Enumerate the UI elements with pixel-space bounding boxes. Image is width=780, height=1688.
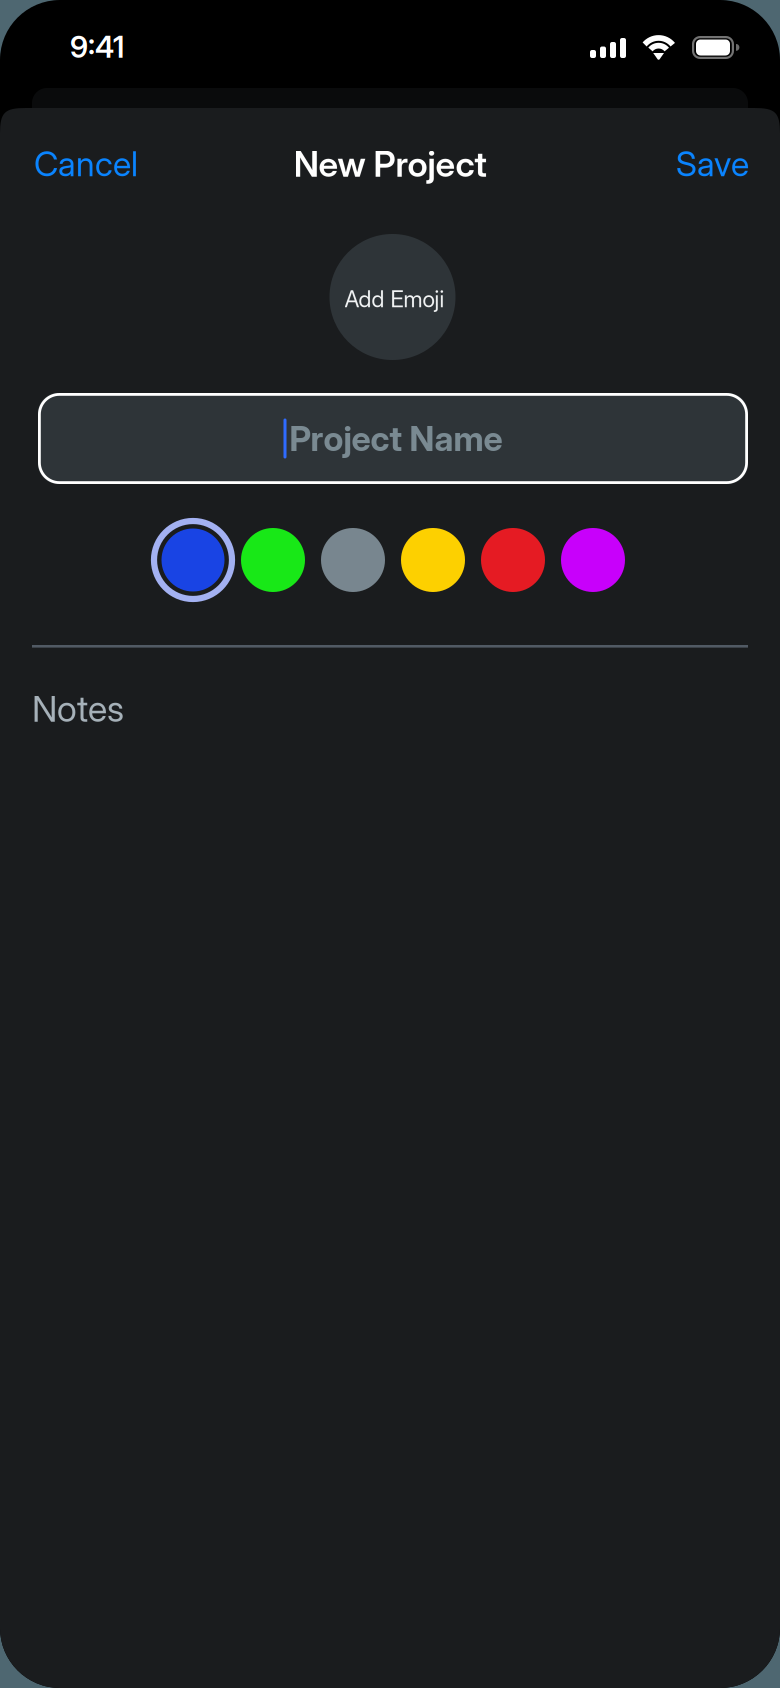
staticText: Cancel	[34, 143, 138, 184]
button[interactable]: Add Emoji	[329, 234, 455, 360]
staticText: 9:41	[70, 29, 124, 65]
button[interactable]: Green	[233, 516, 313, 604]
button[interactable]: Magenta	[553, 516, 633, 604]
button[interactable]: Yellow	[393, 516, 473, 604]
button[interactable]: Grey	[313, 516, 393, 604]
button[interactable]: Cancel	[24, 131, 148, 196]
staticText: New Project	[293, 143, 486, 185]
button[interactable]: Red	[473, 516, 553, 604]
staticText: Save	[676, 143, 749, 184]
staticText: Notes	[32, 687, 124, 730]
button[interactable]: Blue, selected	[153, 516, 233, 604]
button[interactable]: Save	[666, 131, 759, 196]
staticText: Add Emoji	[344, 285, 444, 313]
staticText: Project Name	[289, 418, 502, 459]
